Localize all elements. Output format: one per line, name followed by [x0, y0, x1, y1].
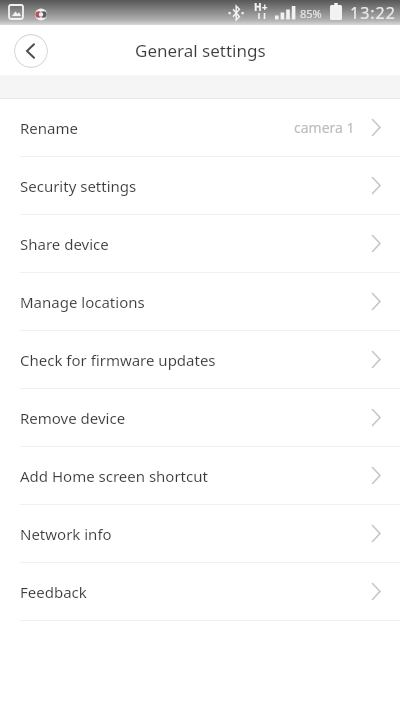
staticText: Share device [20, 234, 109, 254]
staticText: Remove device [20, 408, 126, 428]
button[interactable] [14, 34, 48, 68]
staticText: Network info [20, 524, 112, 544]
staticText: Security settings [20, 176, 137, 196]
staticText: 13:22 [350, 2, 396, 24]
staticText: Manage locations [20, 292, 145, 312]
staticText: General settings [135, 39, 266, 62]
button[interactable]: Remove device [0, 389, 400, 446]
button[interactable]: Add Home screen shortcut [0, 447, 400, 504]
staticText: Add Home screen shortcut [20, 466, 208, 486]
button[interactable]: Manage locations [0, 273, 400, 330]
button[interactable]: Feedback [0, 563, 400, 620]
staticText: camera 1 [294, 118, 355, 137]
staticText: Feedback [20, 582, 87, 602]
button[interactable]: Network info [0, 505, 400, 562]
button[interactable]: Check for firmware updates [0, 331, 400, 388]
staticText: 85% [300, 6, 322, 21]
button[interactable]: Security settings [0, 157, 400, 214]
button[interactable]: Share device [0, 215, 400, 272]
staticText: Check for firmware updates [20, 350, 216, 370]
staticText: H+ [254, 0, 268, 14]
staticText: Rename [20, 118, 78, 138]
button[interactable]: Rename [0, 99, 400, 156]
